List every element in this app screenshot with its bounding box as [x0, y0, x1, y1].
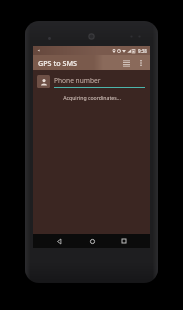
staticText: 9:38 [138, 48, 147, 54]
staticText: GPS to SMS [38, 58, 77, 68]
staticText: Phone number [54, 76, 101, 85]
button[interactable]: More options [135, 57, 147, 69]
button[interactable]: Home [85, 234, 99, 248]
staticText: Acquiring coordinates... [63, 94, 121, 101]
button[interactable]: Recent apps [117, 234, 131, 248]
button[interactable]: Pick contact [37, 75, 50, 88]
button[interactable]: History [120, 57, 132, 69]
button[interactable]: Back [52, 234, 66, 248]
button[interactable]: Phone number [54, 76, 145, 88]
